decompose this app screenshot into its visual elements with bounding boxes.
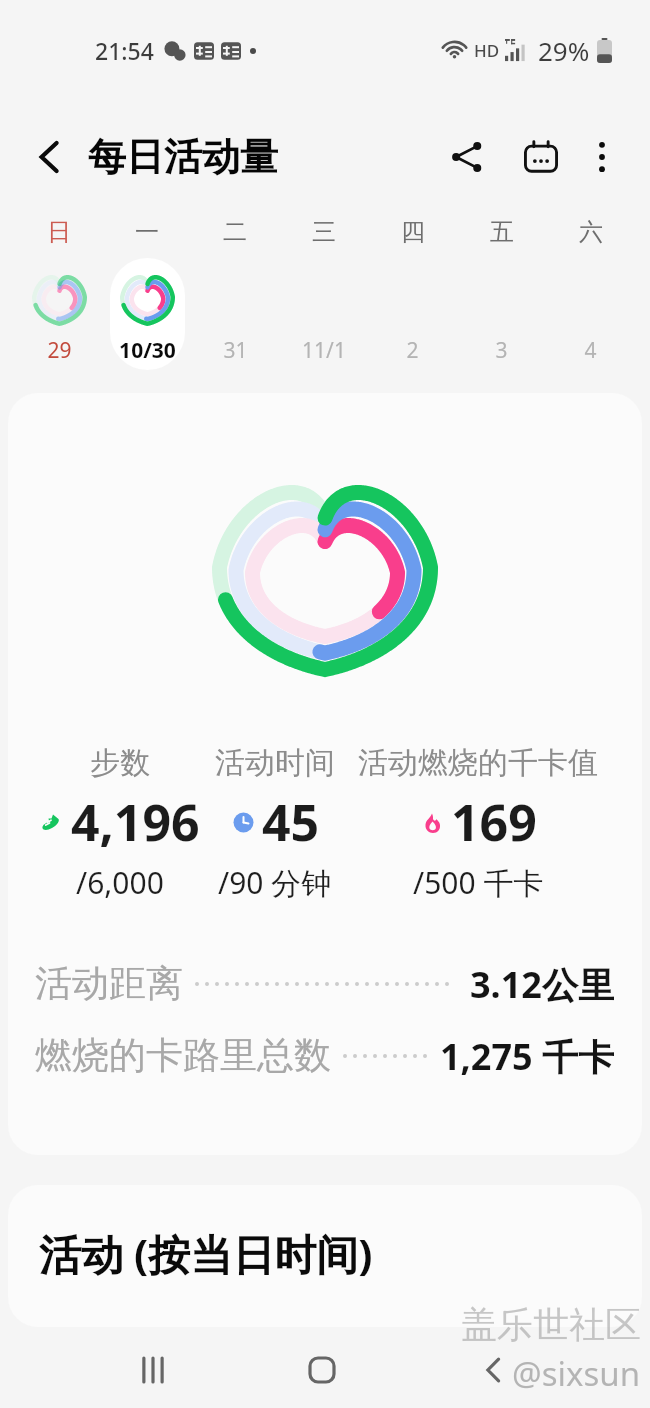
button[interactable]: Recent apps bbox=[121, 1338, 185, 1402]
staticText: 燃烧的卡路里总数 bbox=[35, 1032, 331, 1079]
staticText: 活动时间 bbox=[215, 744, 335, 782]
staticText: 三 bbox=[312, 217, 336, 247]
staticText: 10/30 bbox=[119, 336, 176, 365]
button[interactable]: Back bbox=[23, 131, 75, 183]
staticText: /500 千卡 bbox=[413, 862, 544, 903]
staticText: 活动 (按当日时间) bbox=[39, 1225, 373, 1282]
staticText: 21:54 bbox=[95, 35, 154, 66]
staticText: 31 bbox=[223, 336, 248, 365]
button[interactable]: 2 bbox=[375, 258, 450, 370]
staticText: 29% bbox=[538, 33, 590, 68]
staticText: 45 bbox=[262, 788, 320, 856]
staticText: 二 bbox=[223, 217, 247, 247]
staticText: 1,275 千卡 bbox=[440, 1032, 614, 1079]
staticText: 活动距离 bbox=[35, 960, 183, 1007]
button[interactable]: 10/30 bbox=[110, 258, 185, 370]
button[interactable]: 4 bbox=[553, 258, 628, 370]
staticText: 日 bbox=[47, 217, 71, 247]
button[interactable]: Calendar bbox=[514, 130, 568, 184]
staticText: 活动燃烧的千卡值 bbox=[358, 744, 598, 782]
staticText: 五 bbox=[490, 217, 514, 247]
button[interactable]: More options bbox=[580, 135, 624, 179]
button[interactable]: Home bbox=[290, 1338, 354, 1402]
button[interactable]: 11/1 bbox=[286, 258, 361, 370]
staticText: 六 bbox=[579, 217, 603, 247]
staticText: 11/1 bbox=[302, 336, 346, 365]
staticText: 一 bbox=[135, 217, 159, 247]
staticText: 169 bbox=[451, 788, 537, 856]
staticText: 4,196 bbox=[71, 788, 200, 856]
staticText: 四 bbox=[401, 217, 425, 247]
button[interactable]: 3 bbox=[464, 258, 539, 370]
staticText: /90 分钟 bbox=[218, 862, 332, 903]
staticText: 3.12公里 bbox=[470, 960, 614, 1007]
staticText: 2 bbox=[406, 336, 419, 365]
staticText: 3 bbox=[495, 336, 508, 365]
staticText: 步数 bbox=[90, 744, 150, 782]
button[interactable]: Share bbox=[440, 130, 494, 184]
staticText: 每日活动量 bbox=[88, 133, 278, 181]
button[interactable]: 31 bbox=[198, 258, 273, 370]
staticText: HD bbox=[474, 39, 500, 62]
staticText: /6,000 bbox=[76, 862, 164, 903]
staticText: 29 bbox=[47, 336, 72, 365]
button[interactable]: 29 bbox=[22, 258, 97, 370]
staticText: 盖乐世社区 bbox=[461, 1302, 641, 1347]
staticText: @sixsun bbox=[512, 1351, 641, 1396]
button[interactable]: Back bbox=[461, 1338, 525, 1402]
staticText: 4 bbox=[584, 336, 597, 365]
